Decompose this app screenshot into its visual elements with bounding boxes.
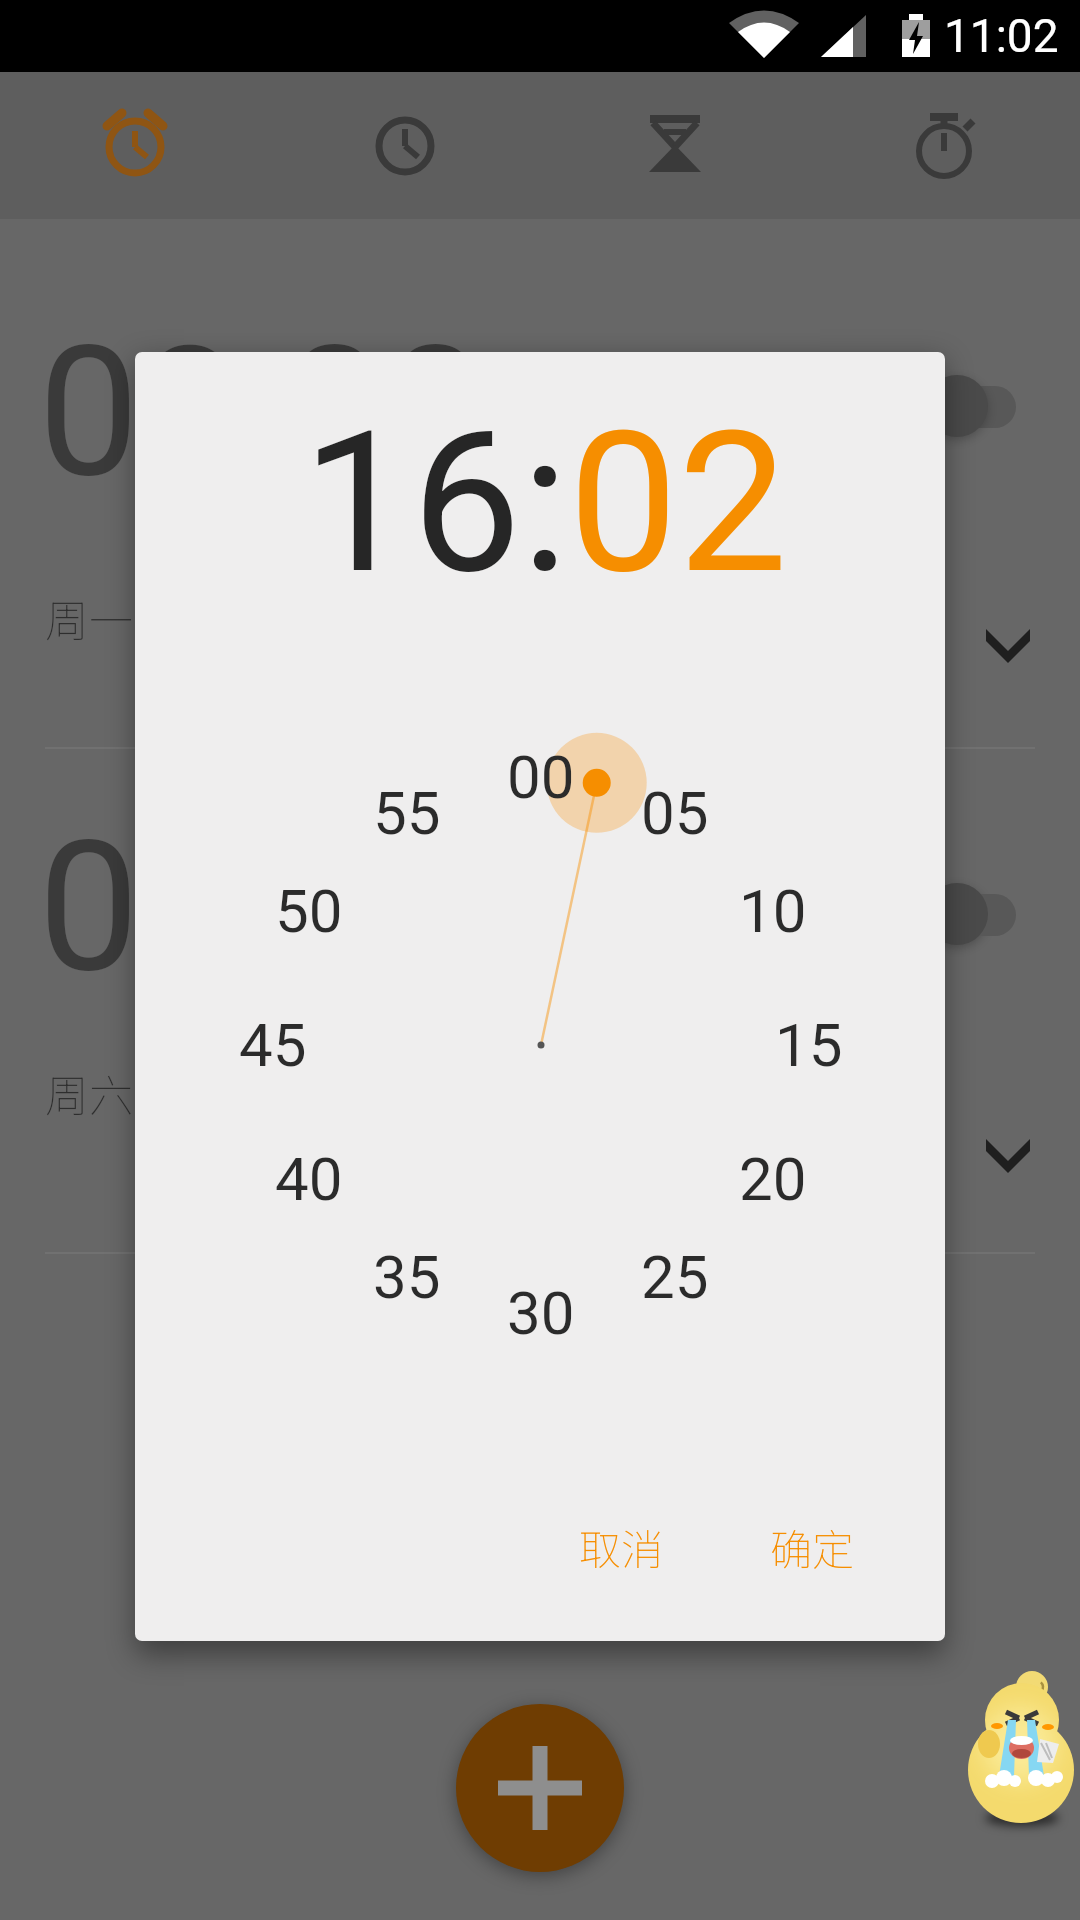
staticText: 09:00	[38, 802, 487, 1013]
staticText: 40	[275, 1144, 343, 1214]
staticText: 30	[507, 1278, 575, 1348]
button[interactable]: 05	[615, 763, 735, 863]
button[interactable]	[0, 72, 270, 219]
staticText: 08:00	[38, 307, 487, 518]
button[interactable]	[540, 72, 810, 219]
staticText: 05	[641, 778, 709, 848]
staticText: 55	[373, 778, 441, 848]
button[interactable]: 35	[347, 1227, 467, 1327]
staticText: 10	[739, 876, 807, 946]
staticText: 00	[507, 742, 575, 812]
button[interactable]: 30	[481, 1263, 601, 1363]
button[interactable]: 40	[249, 1129, 369, 1229]
button[interactable]: 50	[249, 861, 369, 961]
staticText: 取消	[579, 1516, 664, 1577]
button[interactable]: 确定	[717, 1491, 907, 1601]
staticText: 15	[775, 1010, 843, 1080]
staticText: 16:02	[302, 389, 788, 618]
button[interactable]: 45	[213, 995, 333, 1095]
staticText: 20	[739, 1144, 807, 1214]
button[interactable]: 15	[749, 995, 869, 1095]
staticText: 35	[373, 1242, 441, 1312]
staticText: 周六至周日	[45, 1061, 265, 1125]
button[interactable]: 00	[481, 727, 601, 827]
button[interactable]: 55	[347, 763, 467, 863]
button[interactable]: 取消	[526, 1491, 716, 1601]
button[interactable]: 25	[615, 1227, 735, 1327]
staticText: 周一至周五	[45, 586, 265, 650]
staticText: 25	[641, 1242, 709, 1312]
staticText: 确定	[770, 1516, 855, 1577]
staticText: 50	[275, 876, 343, 946]
button[interactable]	[810, 72, 1080, 219]
staticText: 11:02	[944, 9, 1059, 63]
button[interactable]: 10	[713, 861, 833, 961]
staticText: 45	[239, 1010, 307, 1080]
button[interactable]	[456, 1704, 624, 1872]
button[interactable]: 20	[713, 1129, 833, 1229]
button[interactable]	[270, 72, 540, 219]
